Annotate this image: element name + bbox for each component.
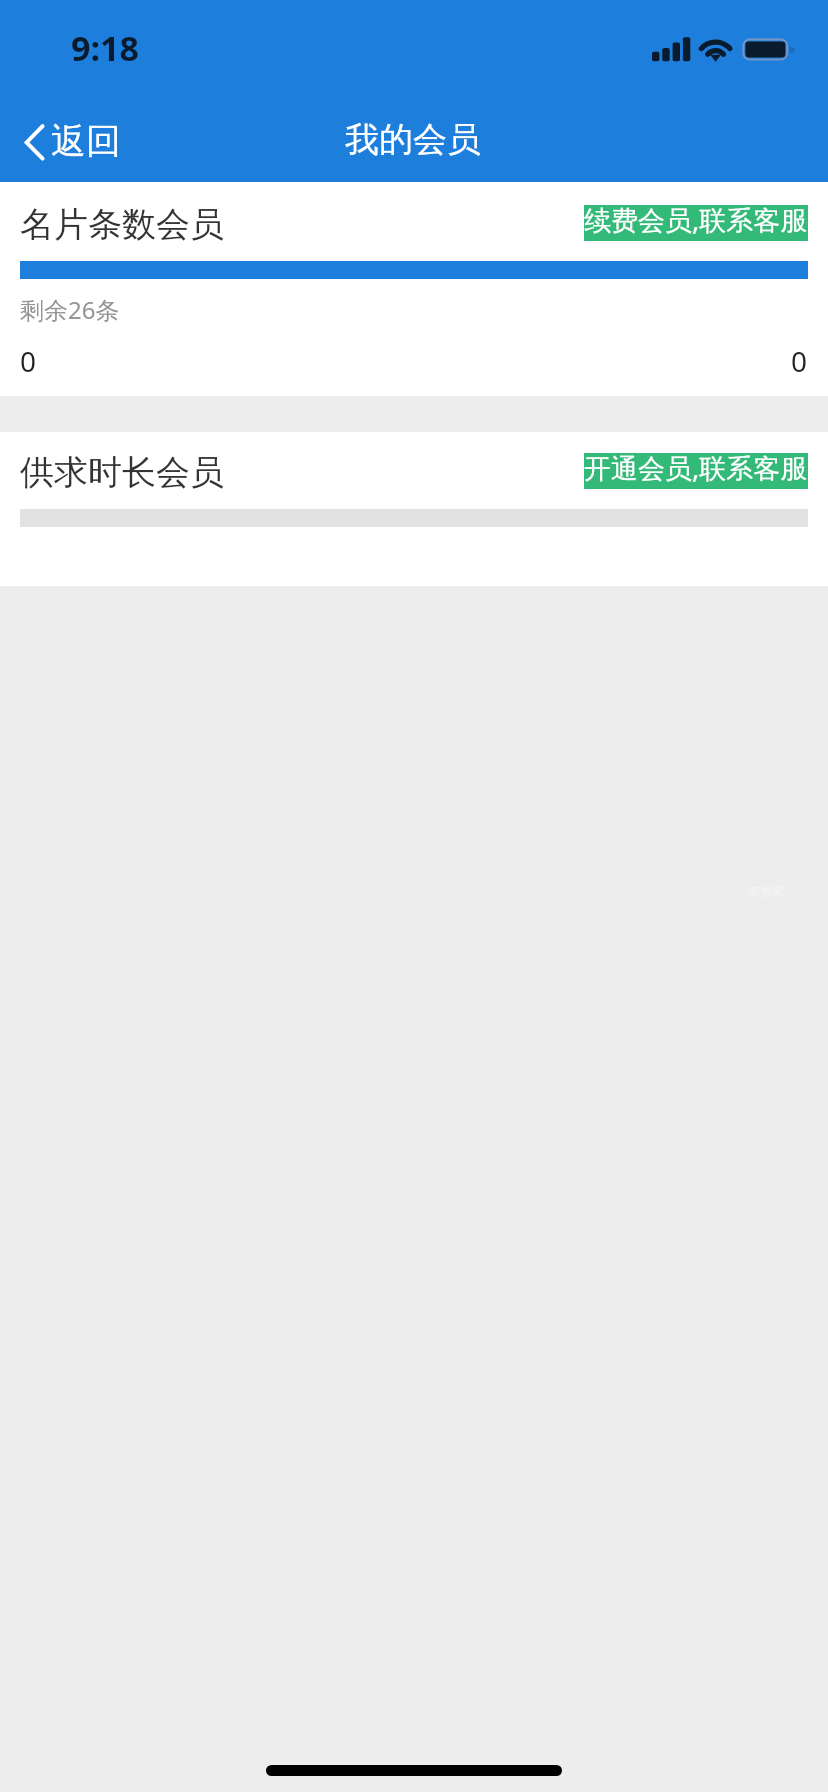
button[interactable]: 供求时长会员 — [0, 432, 828, 586]
staticText: 名片条数会员 — [20, 203, 224, 246]
other: Back — [24, 120, 48, 164]
other: Cellular signal strength — [652, 36, 692, 62]
staticText: 剩余26条 — [20, 293, 120, 326]
staticText: 我的会员 — [345, 118, 481, 161]
button[interactable]: 续费会员,联系客服 — [584, 205, 808, 241]
staticText: 9:18 — [71, 25, 139, 71]
button[interactable]: Back — [12, 103, 139, 181]
button[interactable]: 名片条数会员 — [0, 182, 828, 396]
other: Battery full — [740, 36, 798, 62]
other: Wi-Fi connected — [698, 34, 734, 64]
staticText: 0 — [20, 342, 37, 380]
staticText: 开通会员,联系客服 — [584, 449, 808, 485]
staticText: 续费会员,联系客服 — [584, 201, 808, 237]
staticText: 返回 — [51, 119, 121, 163]
staticText: 供求时长会员 — [20, 451, 224, 494]
button[interactable]: 开通会员,联系客服 — [584, 453, 808, 489]
staticText: 0 — [791, 342, 808, 380]
